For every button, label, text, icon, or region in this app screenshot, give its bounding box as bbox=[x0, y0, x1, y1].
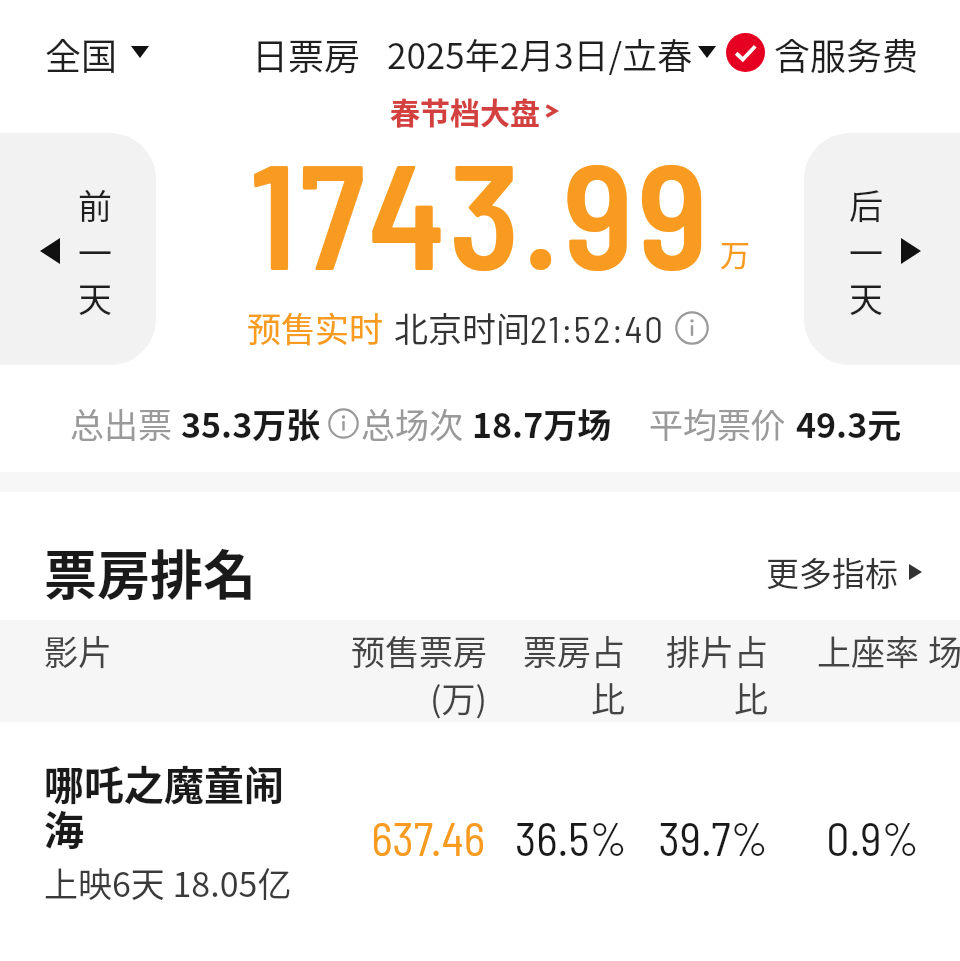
staticText: 36.5% bbox=[505, 810, 627, 865]
staticText: 春节档大盘 bbox=[390, 89, 540, 132]
staticText: 票房排名 bbox=[44, 534, 256, 611]
staticText: 2025年2月3日/立春 bbox=[387, 28, 693, 76]
staticText: 21:52:40 bbox=[530, 306, 665, 350]
button[interactable]: 前一天 bbox=[0, 133, 156, 365]
staticText: 39.7% bbox=[648, 810, 768, 865]
staticText: 上映6天 18.05亿 bbox=[44, 858, 292, 907]
staticText: 平均票价 bbox=[649, 399, 785, 448]
button[interactable]: 总出票 bbox=[70, 399, 359, 448]
staticText: 含服务费 bbox=[774, 28, 919, 76]
button[interactable]: 更多指标 bbox=[766, 548, 922, 596]
staticText: 上座率 bbox=[817, 626, 919, 675]
staticText: 预售实时 bbox=[247, 303, 383, 352]
button[interactable]: 含服务费 bbox=[726, 28, 919, 76]
staticText: 日票房 bbox=[252, 28, 361, 76]
staticText: 场 bbox=[928, 626, 960, 675]
other: 说明 bbox=[675, 311, 709, 345]
staticText: 哪吒之魔童闹海 bbox=[44, 754, 292, 857]
staticText: 637.46 bbox=[285, 810, 485, 865]
button[interactable]: 全国 bbox=[45, 28, 149, 76]
button[interactable]: 后一天 bbox=[804, 133, 960, 365]
staticText: 总出票 bbox=[70, 399, 172, 448]
staticText: 18.7万场 bbox=[472, 399, 612, 448]
staticText: 排片占 比 bbox=[648, 626, 768, 722]
staticText: 万 bbox=[720, 231, 750, 274]
staticText: 总场次 bbox=[361, 399, 463, 448]
button[interactable]: 哪吒之魔童闹海 bbox=[0, 722, 960, 961]
button[interactable]: 春节档大盘 bbox=[390, 89, 558, 132]
button[interactable]: 日票房 bbox=[252, 28, 716, 76]
staticText: 49.3元 bbox=[796, 399, 902, 448]
staticText: 35.3万张 bbox=[181, 399, 321, 448]
staticText: 预售票房 (万) bbox=[205, 626, 487, 722]
staticText: 北京时间 bbox=[394, 303, 530, 352]
staticText: 后 一 天 bbox=[849, 180, 883, 322]
staticText: 影片 bbox=[44, 626, 112, 675]
staticText: 更多指标 bbox=[766, 548, 898, 596]
staticText: 1743.99 bbox=[250, 122, 712, 300]
staticText: 前 一 天 bbox=[78, 180, 112, 322]
staticText: 全国 bbox=[45, 28, 118, 76]
staticText: 票房占 比 bbox=[505, 626, 625, 722]
staticText: 0.9% bbox=[800, 810, 919, 865]
other: 说明 bbox=[328, 408, 359, 439]
